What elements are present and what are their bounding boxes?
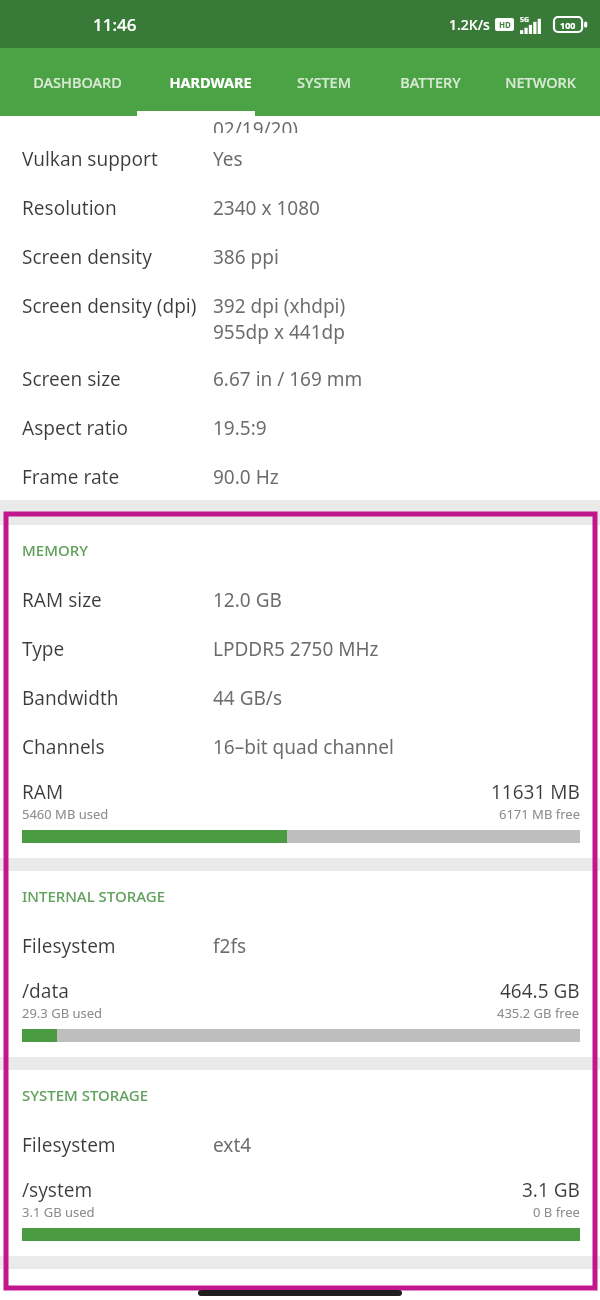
staticText: 1.2K/s	[449, 15, 490, 34]
staticText: SYSTEM STORAGE	[22, 1085, 149, 1105]
staticText: Yes	[213, 146, 243, 172]
button[interactable]: Aspect ratio	[0, 402, 600, 451]
button[interactable]: NETWORK	[484, 48, 596, 116]
staticText: 16–bit quad channel	[213, 734, 394, 760]
staticText: NETWORK	[505, 72, 576, 92]
staticText: 19.5:9	[213, 415, 267, 441]
staticText: 5460 MB used	[22, 805, 109, 823]
button[interactable]: Resolution	[0, 182, 600, 231]
button[interactable]: RAM	[0, 770, 600, 858]
button[interactable]: BATTERY	[376, 48, 484, 116]
staticText: Screen density	[22, 244, 152, 270]
staticText: f2fs	[213, 933, 247, 959]
button[interactable]: Filesystem	[0, 1119, 600, 1168]
staticText: 5G	[520, 15, 530, 25]
button[interactable]: SYSTEM	[271, 48, 376, 116]
other: Battery 100 percent	[553, 16, 588, 33]
button[interactable]: /system	[0, 1168, 600, 1256]
button[interactable]: HARDWARE	[149, 48, 271, 116]
staticText: Type	[22, 636, 65, 662]
staticText: 386 ppi	[213, 244, 279, 270]
staticText: BATTERY	[400, 72, 461, 92]
staticText: 6.67 in / 169 mm	[213, 366, 363, 392]
staticText: /system	[22, 1177, 93, 1203]
staticText: 3.1 GB used	[22, 1203, 95, 1221]
button[interactable]: Screen density	[0, 231, 600, 280]
staticText: 464.5 GB	[500, 978, 580, 1004]
staticText: 29.3 GB used	[22, 1004, 103, 1022]
staticText: HD	[499, 19, 511, 30]
button[interactable]: Frame rate	[0, 451, 600, 500]
staticText: 955dp x 441dp	[213, 319, 345, 345]
button[interactable]: RAM size	[0, 574, 600, 623]
button[interactable]: Bandwidth	[0, 672, 600, 721]
staticText: Aspect ratio	[22, 415, 128, 441]
staticText: 392 dpi (xhdpi)	[213, 293, 346, 319]
staticText: RAM size	[22, 587, 102, 613]
staticText: Vulkan support	[22, 146, 158, 172]
staticText: ext4	[213, 1132, 252, 1158]
staticText: Frame rate	[22, 464, 120, 490]
staticText: DASHBOARD	[33, 72, 122, 92]
staticText: 11:46	[93, 13, 137, 36]
staticText: 100	[560, 19, 576, 31]
staticText: Filesystem	[22, 933, 116, 959]
button[interactable]: Vulkan support	[0, 133, 600, 182]
other: Mobile signal 5G	[520, 15, 546, 34]
staticText: 435.2 GB free	[497, 1004, 580, 1022]
button[interactable]: DASHBOARD	[6, 48, 149, 116]
staticText: 0 B free	[533, 1203, 580, 1221]
staticText: 6171 MB free	[499, 805, 580, 823]
button[interactable]: Channels	[0, 721, 600, 770]
staticText: SYSTEM	[297, 72, 351, 92]
staticText: LPDDR5 2750 MHz	[213, 636, 379, 662]
staticText: INTERNAL STORAGE	[22, 886, 165, 906]
button[interactable]: Type	[0, 623, 600, 672]
button[interactable]: Screen density (dpi)	[0, 280, 600, 353]
staticText: 02/19/20)	[213, 116, 299, 133]
staticText: Screen density (dpi)	[22, 293, 197, 319]
staticText: MEMORY	[22, 540, 88, 560]
staticText: Channels	[22, 734, 105, 760]
staticText: RAM	[22, 779, 64, 805]
staticText: /data	[22, 978, 69, 1004]
staticText: HARDWARE	[169, 72, 252, 92]
staticText: Resolution	[22, 195, 117, 221]
staticText: 90.0 Hz	[213, 464, 279, 490]
staticText: 11631 MB	[491, 779, 580, 805]
staticText: Screen size	[22, 366, 121, 392]
staticText: Bandwidth	[22, 685, 119, 711]
staticText: 2340 x 1080	[213, 195, 320, 221]
button[interactable]: Filesystem	[0, 920, 600, 969]
button[interactable]: Screen size	[0, 353, 600, 402]
staticText: 44 GB/s	[213, 685, 283, 711]
button[interactable]: /data	[0, 969, 600, 1057]
staticText: Filesystem	[22, 1132, 116, 1158]
staticText: 12.0 GB	[213, 587, 282, 613]
staticText: 3.1 GB	[522, 1177, 580, 1203]
